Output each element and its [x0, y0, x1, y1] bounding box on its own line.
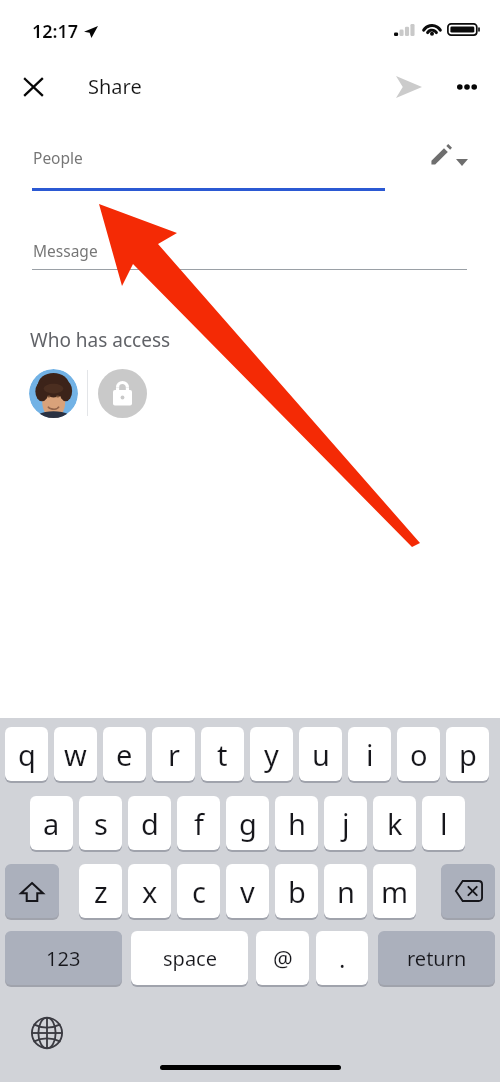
- button[interactable]: a: [30, 796, 73, 850]
- button[interactable]: z: [79, 864, 122, 918]
- staticText: l: [440, 804, 448, 843]
- staticText: a: [43, 804, 60, 843]
- staticText: People: [33, 147, 83, 168]
- staticText: f: [194, 804, 204, 843]
- staticText: y: [264, 735, 279, 774]
- button[interactable]: o: [397, 727, 440, 781]
- staticText: 12:17: [32, 19, 79, 44]
- staticText: u: [312, 735, 330, 774]
- staticText: Who has access: [30, 327, 171, 353]
- staticText: c: [192, 872, 206, 911]
- staticText: b: [288, 872, 306, 911]
- button[interactable]: q: [5, 727, 48, 781]
- button[interactable]: t: [201, 727, 244, 781]
- staticText: .: [339, 942, 346, 975]
- staticText: n: [337, 872, 355, 911]
- button[interactable]: c: [177, 864, 220, 918]
- button[interactable]: y: [250, 727, 293, 781]
- staticText: d: [141, 804, 159, 843]
- staticText: h: [288, 804, 306, 843]
- button[interactable]: n: [324, 864, 367, 918]
- staticText: p: [459, 735, 477, 774]
- button[interactable]: Close: [11, 64, 56, 109]
- button[interactable]: s: [79, 796, 122, 850]
- button[interactable]: w: [54, 727, 97, 781]
- staticText: r: [168, 735, 180, 774]
- button[interactable]: Backspace: [441, 864, 495, 918]
- staticText: o: [410, 735, 428, 774]
- button[interactable]: p: [446, 727, 489, 781]
- staticText: m: [381, 872, 409, 911]
- button[interactable]: .: [316, 931, 368, 985]
- staticText: e: [116, 735, 133, 774]
- staticText: Message: [33, 240, 98, 261]
- button[interactable]: space: [131, 931, 248, 985]
- button[interactable]: u: [299, 727, 342, 781]
- staticText: space: [163, 945, 217, 972]
- staticText: 123: [46, 945, 81, 972]
- button[interactable]: Send: [386, 64, 432, 109]
- staticText: i: [366, 735, 374, 774]
- button[interactable]: Owner avatar: [29, 369, 78, 418]
- staticText: return: [407, 945, 467, 972]
- button[interactable]: l: [422, 796, 465, 850]
- staticText: z: [94, 872, 108, 911]
- button[interactable]: i: [348, 727, 391, 781]
- staticText: t: [217, 735, 228, 774]
- staticText: @: [273, 943, 293, 973]
- staticText: x: [142, 872, 158, 911]
- button[interactable]: Restricted access: [98, 369, 147, 418]
- staticText: w: [64, 735, 87, 774]
- button[interactable]: g: [226, 796, 269, 850]
- staticText: Share: [88, 73, 142, 100]
- button[interactable]: b: [275, 864, 318, 918]
- button[interactable]: Shift: [5, 864, 59, 918]
- button[interactable]: m: [373, 864, 416, 918]
- button[interactable]: e: [103, 727, 146, 781]
- button[interactable]: k: [373, 796, 416, 850]
- button[interactable]: j: [324, 796, 367, 850]
- staticText: s: [94, 804, 108, 843]
- button[interactable]: f: [177, 796, 220, 850]
- button[interactable]: x: [128, 864, 171, 918]
- staticText: j: [342, 804, 350, 843]
- button[interactable]: @: [256, 931, 309, 985]
- button[interactable]: 123: [5, 931, 122, 985]
- button[interactable]: More options: [444, 64, 489, 109]
- button[interactable]: d: [128, 796, 171, 850]
- button[interactable]: return: [378, 931, 495, 985]
- button[interactable]: Change keyboard: [26, 1012, 68, 1054]
- staticText: q: [18, 735, 36, 774]
- staticText: k: [387, 804, 403, 843]
- button[interactable]: h: [275, 796, 318, 850]
- button[interactable]: Change permission: [422, 134, 478, 178]
- staticText: g: [239, 804, 257, 843]
- button[interactable]: v: [226, 864, 269, 918]
- staticText: v: [240, 872, 255, 911]
- button[interactable]: r: [152, 727, 195, 781]
